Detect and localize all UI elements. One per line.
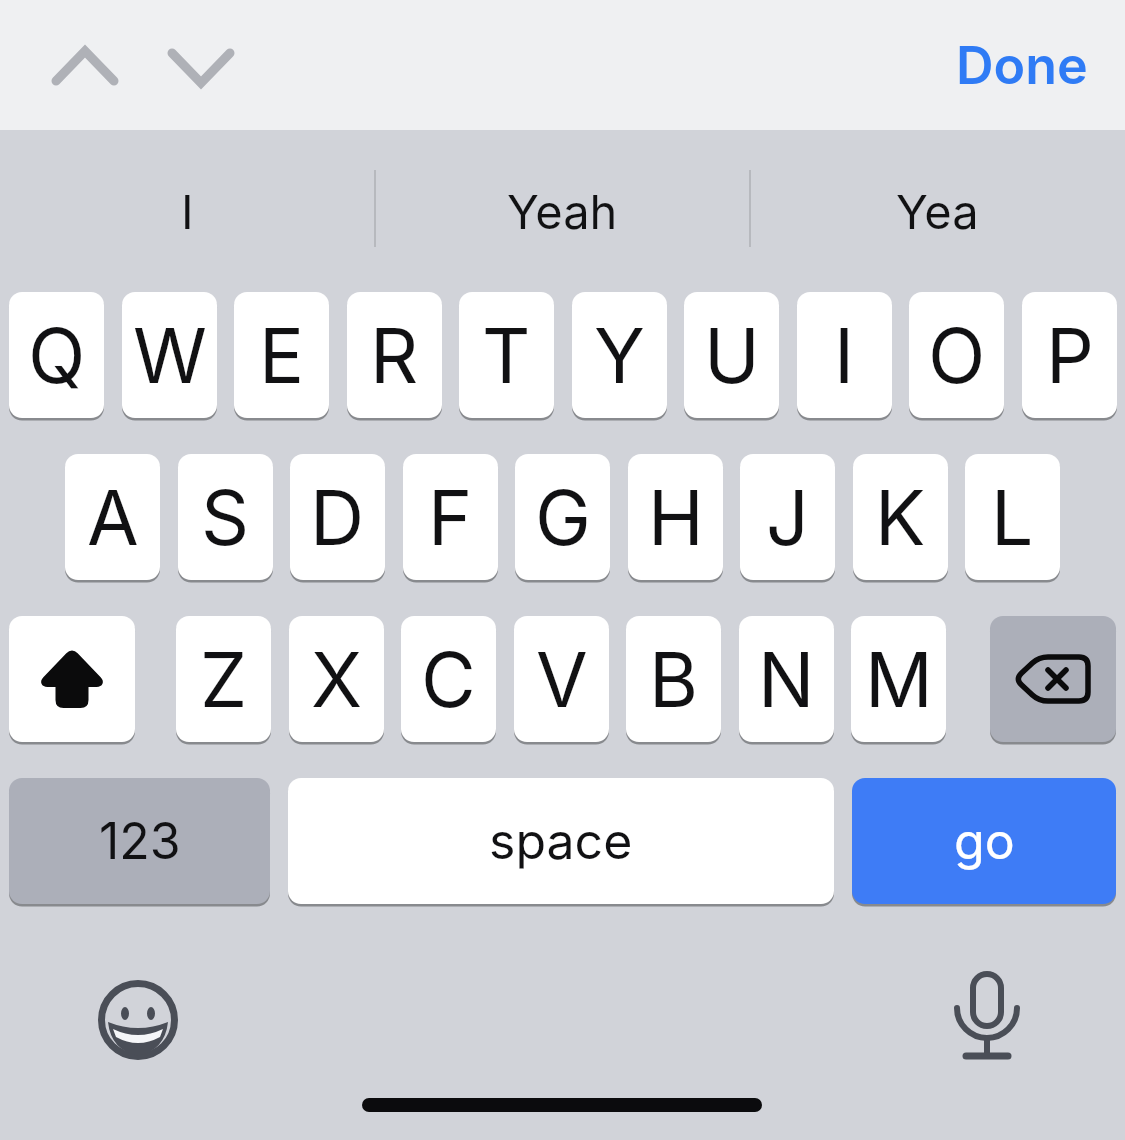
- staticText: V: [536, 634, 588, 725]
- button[interactable]: A: [65, 454, 160, 580]
- staticText: G: [535, 472, 591, 563]
- button[interactable]: P: [1022, 292, 1117, 418]
- staticText: W: [133, 310, 207, 401]
- staticText: M: [865, 634, 933, 725]
- button[interactable]: H: [628, 454, 723, 580]
- button[interactable]: G: [515, 454, 610, 580]
- button[interactable]: R: [347, 292, 442, 418]
- staticText: I: [834, 310, 855, 401]
- button[interactable]: W: [122, 292, 217, 418]
- staticText: D: [310, 472, 365, 563]
- staticText: Z: [200, 634, 248, 725]
- button[interactable]: C: [401, 616, 496, 742]
- button[interactable]: F: [403, 454, 498, 580]
- button[interactable]: go: [852, 778, 1116, 904]
- button[interactable]: D: [290, 454, 385, 580]
- staticText: C: [421, 634, 476, 725]
- staticText: U: [704, 310, 760, 401]
- button[interactable]: T: [459, 292, 554, 418]
- button[interactable]: N: [739, 616, 834, 742]
- button[interactable]: [990, 616, 1116, 742]
- staticText: S: [201, 472, 250, 563]
- button[interactable]: B: [626, 616, 721, 742]
- staticText: J: [766, 472, 809, 563]
- staticText: L: [991, 472, 1034, 563]
- button[interactable]: [9, 616, 135, 742]
- button[interactable]: 123: [9, 778, 270, 904]
- button[interactable]: E: [234, 292, 329, 418]
- staticText: Yea: [896, 183, 979, 240]
- button[interactable]: I: [0, 130, 375, 292]
- button[interactable]: Q: [9, 292, 104, 418]
- staticText: P: [1046, 310, 1094, 401]
- button[interactable]: Z: [176, 616, 271, 742]
- staticText: O: [928, 310, 986, 401]
- button[interactable]: Yea: [750, 130, 1125, 292]
- button[interactable]: I: [797, 292, 892, 418]
- staticText: E: [259, 310, 305, 401]
- staticText: H: [648, 472, 704, 563]
- staticText: Done: [956, 34, 1088, 97]
- button[interactable]: U: [684, 292, 779, 418]
- button[interactable]: K: [853, 454, 948, 580]
- staticText: X: [311, 634, 363, 725]
- staticText: Y: [594, 310, 645, 401]
- button[interactable]: Y: [572, 292, 667, 418]
- staticText: 123: [99, 811, 181, 871]
- button[interactable]: O: [909, 292, 1004, 418]
- staticText: N: [758, 634, 815, 725]
- button[interactable]: L: [965, 454, 1060, 580]
- staticText: Yeah: [507, 183, 618, 240]
- button[interactable]: Done: [942, 0, 1102, 130]
- staticText: R: [370, 310, 419, 401]
- staticText: B: [649, 634, 699, 725]
- button[interactable]: X: [289, 616, 384, 742]
- staticText: K: [875, 472, 926, 563]
- staticText: Q: [28, 310, 86, 401]
- button[interactable]: J: [740, 454, 835, 580]
- button[interactable]: space: [288, 778, 834, 904]
- button[interactable]: Yeah: [375, 130, 750, 292]
- staticText: go: [954, 811, 1015, 871]
- button[interactable]: [927, 956, 1047, 1076]
- staticText: F: [428, 472, 473, 563]
- staticText: A: [87, 472, 139, 563]
- button[interactable]: S: [178, 454, 273, 580]
- button[interactable]: V: [514, 616, 609, 742]
- staticText: I: [181, 183, 194, 240]
- staticText: T: [482, 310, 531, 401]
- staticText: space: [489, 811, 633, 871]
- button[interactable]: [78, 960, 198, 1080]
- button[interactable]: M: [851, 616, 946, 742]
